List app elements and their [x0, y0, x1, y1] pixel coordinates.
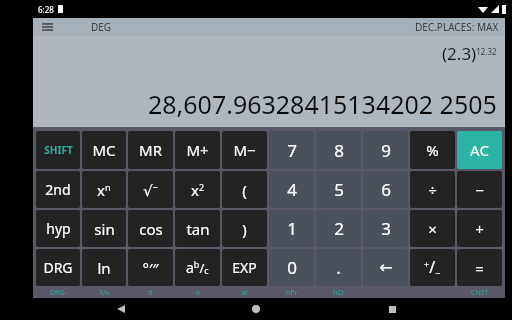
- staticText: DEG: [91, 20, 112, 34]
- staticText: EXP: [232, 258, 257, 277]
- staticText: 28,607.96328415134202 2505: [148, 87, 497, 121]
- staticText: DEC.PLACES: MAX: [415, 20, 499, 34]
- button[interactable]: DRG: [36, 249, 80, 286]
- staticText: 2: [334, 217, 344, 240]
- button[interactable]: =: [457, 249, 502, 286]
- button[interactable]: hyp: [36, 210, 80, 247]
- staticText: 8: [334, 139, 344, 162]
- button[interactable]: 6: [363, 171, 408, 208]
- button[interactable]: 2: [316, 210, 361, 247]
- button[interactable]: M−: [222, 131, 267, 169]
- button[interactable]: Menu: [39, 19, 55, 35]
- staticText: MR: [139, 140, 162, 160]
- button[interactable]: AC: [457, 131, 502, 169]
- staticText: 9: [381, 139, 391, 162]
- button[interactable]: °′″: [128, 249, 173, 286]
- staticText: M−: [233, 140, 256, 160]
- button[interactable]: ÷: [410, 171, 455, 208]
- staticText: ln: [97, 258, 111, 278]
- staticText: e: [196, 288, 200, 298]
- staticText: −: [475, 180, 484, 200]
- button[interactable]: 1: [269, 210, 314, 247]
- button[interactable]: 3: [363, 210, 408, 247]
- button[interactable]: MR: [128, 131, 173, 169]
- button[interactable]: ): [222, 210, 267, 247]
- staticText: 5: [334, 178, 344, 201]
- staticText: xn: [97, 180, 111, 200]
- staticText: +: [475, 219, 484, 239]
- staticText: SHIFT: [44, 143, 73, 157]
- staticText: 6: [381, 178, 391, 201]
- button[interactable]: −: [457, 171, 502, 208]
- button[interactable]: 8: [316, 131, 361, 169]
- staticText: tan: [186, 219, 210, 239]
- button[interactable]: %: [410, 131, 455, 169]
- staticText: 1/x: [99, 288, 110, 298]
- staticText: hyp: [46, 219, 71, 238]
- button[interactable]: 2nd: [36, 171, 80, 208]
- staticText: ab/c: [186, 258, 209, 277]
- staticText: sin: [94, 219, 115, 239]
- staticText: MC: [92, 140, 116, 160]
- button[interactable]: Recents: [377, 298, 407, 320]
- staticText: 3: [381, 217, 391, 240]
- staticText: nPr: [286, 288, 298, 298]
- button[interactable]: EXP: [222, 249, 267, 286]
- button[interactable]: 9: [363, 131, 408, 169]
- staticText: ÷: [428, 180, 437, 200]
- staticText: 0: [287, 256, 297, 279]
- staticText: .: [336, 256, 341, 279]
- staticText: nCr: [333, 288, 345, 298]
- staticText: cos: [139, 219, 163, 239]
- button[interactable]: x2: [175, 171, 220, 208]
- staticText: 2nd: [45, 180, 71, 199]
- button[interactable]: ×: [410, 210, 455, 247]
- button[interactable]: 7: [269, 131, 314, 169]
- button[interactable]: cos: [128, 210, 173, 247]
- staticText: π: [148, 288, 153, 298]
- staticText: x2: [191, 180, 205, 200]
- button[interactable]: sin: [82, 210, 126, 247]
- staticText: DRG: [43, 258, 73, 277]
- staticText: CNST: [471, 288, 489, 298]
- staticText: AC: [470, 140, 489, 160]
- staticText: M+: [186, 140, 209, 160]
- staticText: ×: [428, 219, 437, 239]
- button[interactable]: Home: [241, 298, 271, 320]
- button[interactable]: 0: [269, 249, 314, 286]
- button[interactable]: 4: [269, 171, 314, 208]
- staticText: 4: [287, 178, 297, 201]
- staticText: +/−: [424, 256, 441, 280]
- staticText: 7: [287, 139, 297, 162]
- button[interactable]: xn: [82, 171, 126, 208]
- staticText: ←: [379, 258, 393, 277]
- staticText: (2.3)12.32: [442, 42, 497, 65]
- staticText: =: [475, 258, 484, 278]
- staticText: 1: [287, 217, 297, 240]
- staticText: (: [242, 180, 247, 200]
- button[interactable]: M+: [175, 131, 220, 169]
- button[interactable]: ab/c: [175, 249, 220, 286]
- button[interactable]: +/−: [410, 249, 455, 286]
- button[interactable]: .: [316, 249, 361, 286]
- button[interactable]: Back: [106, 298, 136, 320]
- button[interactable]: √⁻: [128, 171, 173, 208]
- button[interactable]: MC: [82, 131, 126, 169]
- button[interactable]: ln: [82, 249, 126, 286]
- staticText: %: [426, 140, 439, 160]
- staticText: °′″: [142, 258, 159, 278]
- staticText: x!: [242, 288, 248, 298]
- button[interactable]: Backspace: [363, 249, 408, 286]
- staticText: 6:28: [38, 4, 54, 15]
- button[interactable]: 5: [316, 171, 361, 208]
- staticText: √⁻: [143, 180, 158, 200]
- button[interactable]: +: [457, 210, 502, 247]
- button[interactable]: tan: [175, 210, 220, 247]
- button[interactable]: SHIFT: [36, 131, 80, 169]
- button[interactable]: (: [222, 171, 267, 208]
- staticText: DRG‑: [50, 288, 67, 298]
- staticText: ): [242, 219, 247, 239]
